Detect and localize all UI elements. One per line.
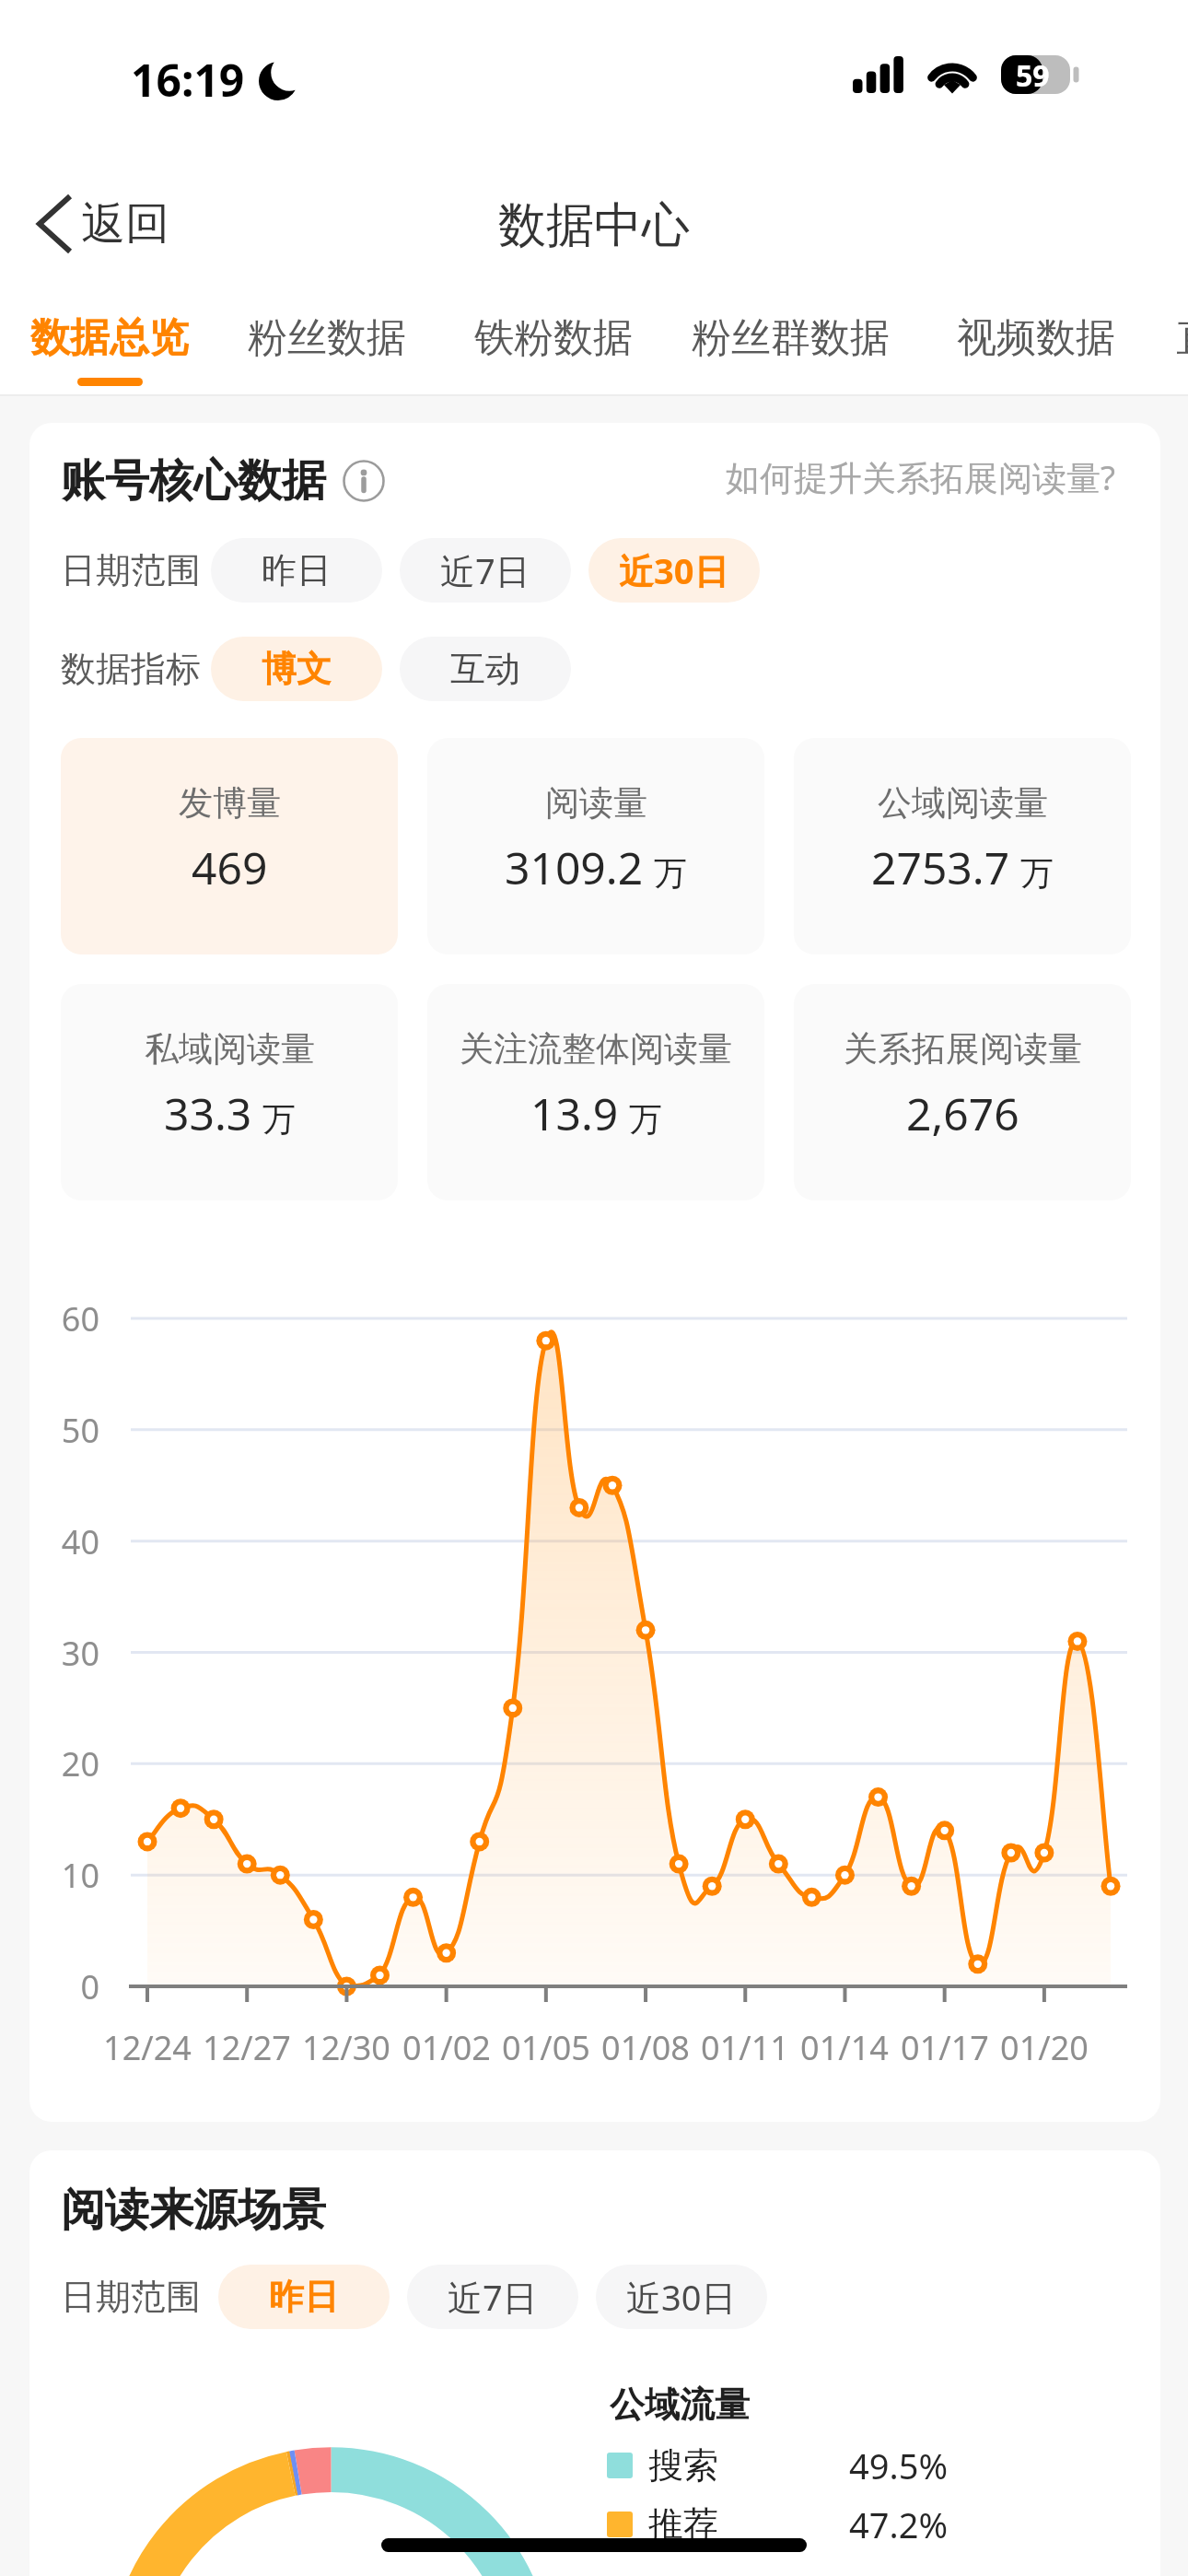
button[interactable]: 粉丝群数据 (692, 313, 890, 378)
staticText: 关系拓展阅读量 (844, 1027, 1082, 1071)
staticText: 49.5% (849, 2441, 948, 2489)
staticText: 万 (1020, 852, 1054, 894)
button[interactable]: 互动 (400, 637, 571, 701)
button[interactable]: 如何提升关系拓展阅读量? (716, 444, 1125, 509)
button[interactable]: 返回 (31, 188, 175, 260)
staticText: 万 (654, 852, 687, 894)
staticText: 昨日 (269, 2275, 339, 2319)
staticText: 50 (61, 1408, 99, 1453)
staticText: 20 (61, 1741, 99, 1786)
staticText: 如何提升关系拓展阅读量? (726, 453, 1116, 500)
staticText: 日期范围 (61, 2275, 201, 2319)
staticText: 59 (1016, 55, 1050, 94)
staticText: 近30日 (619, 546, 729, 594)
staticText: 12/30 (302, 2025, 390, 2070)
staticText: 万 (629, 1098, 662, 1140)
staticText: 01/20 (1000, 2025, 1089, 2070)
button[interactable]: 近30日 (588, 538, 760, 603)
staticText: 私域阅读量 (145, 1027, 315, 1071)
staticText: 30 (61, 1631, 99, 1676)
staticText: 3109.2 (505, 837, 644, 897)
staticText: 视频数据 (957, 313, 1115, 363)
staticText: 搜索 (648, 2443, 718, 2488)
button[interactable]: 粉丝数据 (248, 313, 406, 378)
button[interactable]: 阅读量 (427, 738, 764, 954)
staticText: 40 (61, 1519, 99, 1564)
button[interactable]: 近7日 (407, 2265, 578, 2329)
button[interactable]: Info (342, 459, 386, 503)
staticText: 2753.7 (871, 837, 1010, 897)
staticText: 01/02 (402, 2025, 491, 2070)
staticText: 01/17 (901, 2025, 989, 2070)
button[interactable]: 关系拓展阅读量 (794, 984, 1131, 1200)
staticText: 01/11 (701, 2025, 789, 2070)
staticText: 铁粉数据 (474, 313, 633, 363)
button[interactable]: 近30日 (596, 2265, 767, 2329)
button[interactable]: 昨日 (218, 2265, 390, 2329)
staticText: 万 (262, 1098, 296, 1140)
staticText: 阅读来源场景 (61, 2183, 326, 2238)
button[interactable]: 发博量 (61, 738, 398, 954)
staticText: 近7日 (440, 546, 530, 594)
staticText: 阅读量 (545, 781, 647, 825)
staticText: 12/24 (103, 2025, 192, 2070)
staticText: 公域流量 (610, 2383, 750, 2427)
staticText: 推荐 (648, 2502, 718, 2547)
button[interactable]: 数据总览 (30, 313, 189, 386)
staticText: 01/14 (800, 2025, 889, 2070)
staticText: 469 (192, 837, 268, 897)
staticText: 0 (80, 1964, 99, 2009)
staticText: 60 (61, 1296, 99, 1341)
button[interactable]: 铁粉数据 (474, 313, 633, 378)
staticText: 直 (1176, 313, 1188, 363)
staticText: 互动 (450, 647, 520, 691)
staticText: 12/27 (203, 2025, 291, 2070)
staticText: 粉丝数据 (248, 313, 406, 363)
staticText: 数据中心 (498, 195, 690, 256)
staticText: 近30日 (626, 2273, 737, 2321)
staticText: 日期范围 (61, 548, 201, 592)
staticText: 昨日 (262, 548, 332, 592)
staticText: 返回 (81, 196, 169, 252)
button[interactable]: 关注流整体阅读量 (427, 984, 764, 1200)
staticText: 2,676 (906, 1083, 1019, 1143)
button[interactable]: 视频数据 (957, 313, 1115, 378)
staticText: 近7日 (448, 2273, 538, 2321)
staticText: 关注流整体阅读量 (460, 1027, 732, 1071)
staticText: 粉丝群数据 (692, 313, 890, 363)
button[interactable]: 公域阅读量 (794, 738, 1131, 954)
staticText: 47.2% (849, 2500, 948, 2548)
staticText: 10 (61, 1853, 99, 1898)
staticText: 账号核心数据 (61, 453, 326, 509)
staticText: 16:19 (131, 50, 245, 110)
button[interactable]: 昨日 (211, 538, 382, 603)
staticText: 01/08 (601, 2025, 690, 2070)
staticText: 数据总览 (30, 313, 189, 363)
staticText: 博文 (262, 647, 332, 691)
staticText: 13.9 (530, 1083, 619, 1143)
button[interactable]: 直 (1176, 313, 1188, 378)
button[interactable]: 私域阅读量 (61, 984, 398, 1200)
button[interactable]: 博文 (211, 637, 382, 701)
staticText: 01/05 (502, 2025, 590, 2070)
staticText: 发博量 (179, 781, 281, 825)
button[interactable]: 近7日 (400, 538, 571, 603)
staticText: 公域阅读量 (878, 781, 1048, 825)
staticText: 数据指标 (61, 647, 201, 691)
staticText: 33.3 (164, 1083, 252, 1143)
